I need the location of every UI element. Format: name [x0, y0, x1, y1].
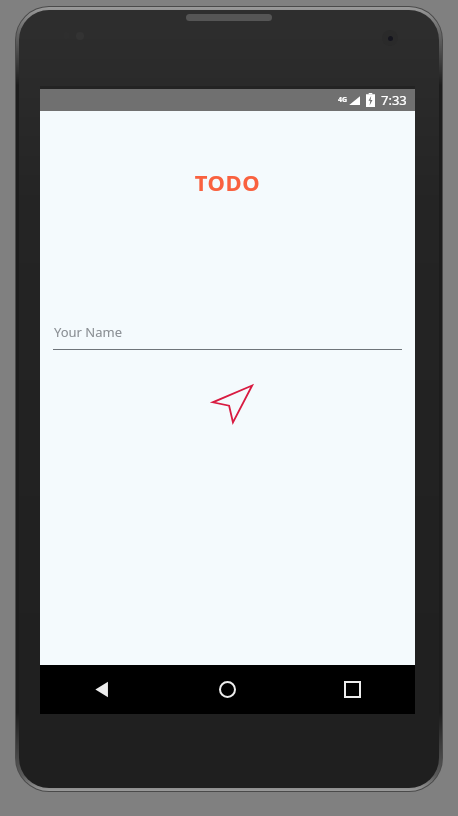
button[interactable]: Recent apps: [290, 665, 415, 714]
staticText: Your Name: [54, 323, 123, 341]
button[interactable]: Your Name: [53, 323, 402, 350]
staticText: 4G: [338, 95, 348, 105]
staticText: 7:33: [381, 91, 407, 109]
button[interactable]: Home: [165, 665, 290, 714]
button[interactable]: Back: [40, 665, 165, 714]
other: Cursor: [208, 383, 256, 425]
staticText: TODO: [40, 167, 415, 197]
